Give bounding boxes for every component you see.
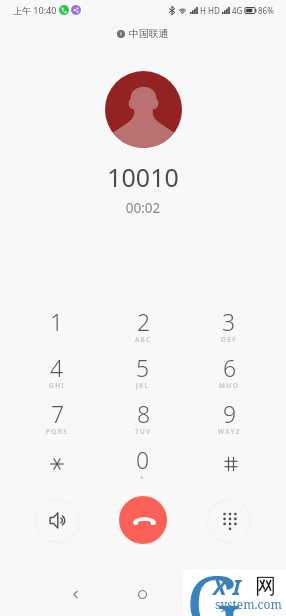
staticText: TUV [135,427,152,436]
button[interactable]: 4 [14,352,100,398]
staticText: 2 [137,306,151,337]
button[interactable]: 2 [100,306,186,352]
staticText: 4 [50,352,64,383]
staticText: 上午 10:40 [13,4,57,16]
button[interactable]: Back [55,574,95,614]
staticText: PQRS [46,427,69,436]
staticText: 6 [223,352,237,383]
staticText: 86% [258,5,274,16]
button[interactable]: End call [119,496,167,544]
staticText: GHI [49,381,65,390]
staticText: 网 [255,573,276,599]
staticText: H HD [200,5,220,16]
staticText: 8 [137,398,151,429]
button[interactable]: 9 [186,398,272,444]
button[interactable]: 8 [100,398,186,444]
staticText: 7 [51,398,65,429]
staticText: 中国联通 [129,28,169,40]
staticText: 4G [232,5,243,16]
staticText: WXYZ [218,427,241,436]
staticText: 9 [223,398,237,429]
staticText: MNO [219,381,240,390]
staticText: XI [213,571,247,601]
button[interactable]: 0 [100,444,186,490]
staticText: + [140,473,146,482]
staticText: 3 [222,306,236,337]
staticText: 00:02 [0,199,286,217]
button[interactable]: 1 [14,306,100,352]
staticText: JKL [136,381,150,390]
staticText: G [186,550,241,616]
button[interactable]: Dialpad [207,499,251,543]
staticText: 10010 [0,160,286,194]
button[interactable] [14,444,100,490]
button[interactable]: 5 [100,352,186,398]
staticText: ABC [135,335,152,344]
button[interactable]: Home [122,574,162,614]
staticText: 1 [50,306,64,337]
button[interactable]: Speaker [35,499,79,543]
button[interactable] [186,444,272,490]
staticText: DEF [221,335,237,344]
staticText: 5 [136,352,150,383]
button[interactable]: 6 [186,352,272,398]
staticText: system.com [215,596,282,612]
button[interactable]: 7 [14,398,100,444]
button[interactable]: 3 [186,306,272,352]
staticText: 0 [136,444,150,475]
